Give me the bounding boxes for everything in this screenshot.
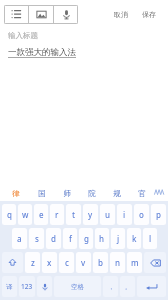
button[interactable]: n [110,252,125,273]
staticText: l [149,233,152,244]
button[interactable]: 保存 [138,8,160,21]
button[interactable]: Language [2,276,17,297]
staticText: s [35,233,39,244]
staticText: i [123,209,126,220]
button[interactable]: a [12,228,27,249]
staticText: 国 [38,189,46,198]
button[interactable]: b [93,252,108,273]
staticText: j [117,233,120,244]
button[interactable]: q [2,204,16,225]
staticText: c [65,257,69,268]
staticText: 一款强大的输入法 [8,47,76,58]
staticText: u [105,209,111,220]
button[interactable]: f [63,228,77,249]
staticText: 规 [113,189,121,198]
button[interactable]: v [76,252,91,273]
staticText: 师 [63,189,71,198]
staticText: f [69,233,72,244]
staticText: y [88,209,93,220]
staticText: 译 [6,283,13,291]
staticText: r [55,209,59,220]
staticText: 123 [21,282,33,291]
button[interactable]: 国 [29,186,54,201]
button[interactable]: Space [54,276,101,297]
button[interactable]: o [134,204,149,225]
button[interactable]: Numbers [19,276,35,297]
staticText: z [31,257,35,268]
button[interactable]: m [127,252,142,273]
button[interactable]: 院 [79,186,104,201]
staticText: g [84,233,89,244]
staticText: h [99,233,105,244]
button[interactable]: g [79,228,93,249]
button[interactable]: 师 [54,186,79,201]
button[interactable]: Toolbar action [29,5,53,24]
button[interactable]: x [42,252,57,273]
button[interactable]: Enter [137,276,166,297]
button[interactable]: Toolbar action [54,5,78,24]
staticText: m [131,257,139,268]
staticText: k [132,233,137,244]
button[interactable]: 律 [3,186,29,201]
button[interactable]: z [25,252,40,273]
staticText: p [156,209,161,220]
button[interactable]: Voice input [37,276,52,297]
staticText: t [72,209,76,220]
button[interactable]: Backspace [144,252,166,273]
button[interactable]: u [100,204,115,225]
staticText: a [17,233,22,244]
button[interactable]: s [29,228,44,249]
button[interactable]: Shift [2,252,23,273]
button[interactable]: Comma [103,276,118,297]
staticText: n [115,257,121,268]
staticText: 律 [12,189,20,198]
button[interactable]: w [18,204,32,225]
button[interactable]: t [66,204,81,225]
button[interactable]: h [95,228,109,249]
staticText: b [98,257,103,268]
button[interactable]: l [143,228,157,249]
button[interactable]: k [127,228,141,249]
button[interactable]: y [83,204,98,225]
staticText: 。 [125,283,131,291]
staticText: 官 [138,189,146,198]
button[interactable]: j [111,228,125,249]
staticText: v [81,257,86,268]
staticText: q [7,209,12,220]
button[interactable]: i [117,204,132,225]
button[interactable]: Toolbar action [4,5,28,24]
staticText: ， [108,283,114,291]
staticText: 空格 [71,283,84,291]
staticText: o [139,209,144,220]
button[interactable]: p [151,204,166,225]
staticText: 院 [88,189,96,198]
staticText: d [51,233,56,244]
button[interactable]: Period [120,276,135,297]
button[interactable]: c [59,252,74,273]
button[interactable]: 官 [129,186,154,201]
button[interactable]: d [46,228,61,249]
button[interactable]: r [50,204,64,225]
staticText: e [39,209,44,220]
button[interactable]: e [34,204,48,225]
button[interactable]: 取消 [110,8,132,21]
staticText: w [22,209,29,220]
button[interactable]: 输入标题 [8,31,38,40]
button[interactable]: 规 [104,186,129,201]
staticText: x [47,257,52,268]
